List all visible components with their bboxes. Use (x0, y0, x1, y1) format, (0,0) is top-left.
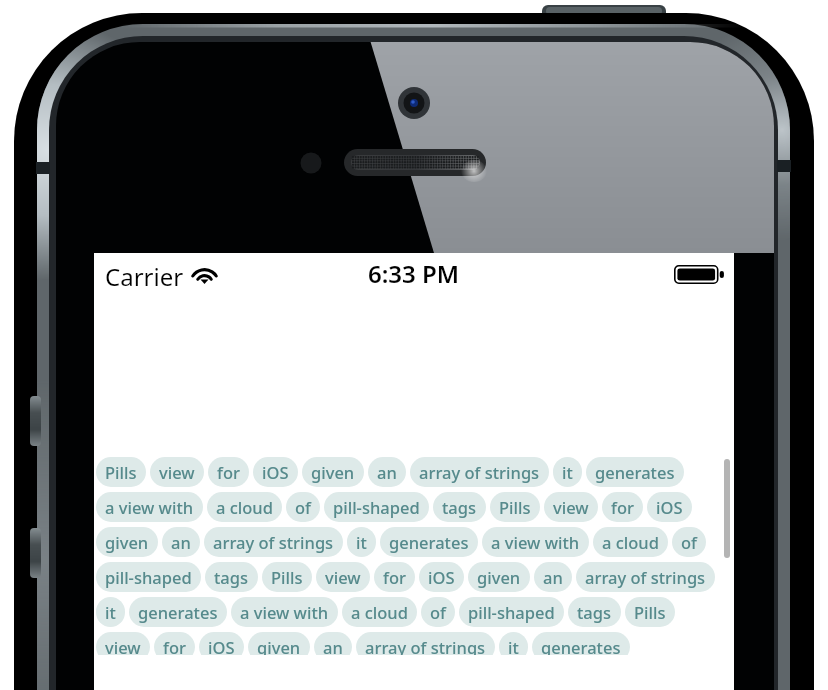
button[interactable]: for (154, 632, 195, 655)
button[interactable]: it (499, 632, 528, 655)
staticText: iOS (262, 461, 289, 483)
staticText: of (430, 601, 446, 623)
button[interactable]: Pills (262, 562, 312, 592)
button[interactable]: array of strings (410, 457, 549, 487)
staticText: pill-shaped (468, 601, 555, 623)
button[interactable]: an (314, 632, 352, 655)
button[interactable]: pill-shaped (459, 597, 564, 627)
button[interactable]: given (96, 527, 158, 557)
staticText: array of strings (419, 461, 540, 483)
button[interactable]: generates (129, 597, 227, 627)
button[interactable]: generates (532, 632, 630, 655)
button[interactable]: it (347, 527, 376, 557)
button[interactable]: iOS (253, 457, 298, 487)
button[interactable]: for (374, 562, 415, 592)
button[interactable]: a cloud (342, 597, 417, 627)
staticText: an (377, 461, 397, 483)
staticText: Pills (271, 566, 303, 588)
button[interactable]: generates (380, 527, 478, 557)
button[interactable]: Pills (625, 597, 675, 627)
staticText: it (356, 531, 367, 553)
staticText: a cloud (602, 531, 659, 553)
staticText: tags (442, 496, 477, 518)
staticText: for (217, 461, 240, 483)
staticText: given (477, 566, 521, 588)
button[interactable]: view (544, 492, 598, 522)
button[interactable]: view (316, 562, 370, 592)
staticText: for (383, 566, 406, 588)
staticText: pill-shaped (333, 496, 420, 518)
staticText: a cloud (351, 601, 408, 623)
staticText: an (171, 531, 191, 553)
button[interactable]: iOS (647, 492, 692, 522)
button[interactable]: tags (205, 562, 258, 592)
button[interactable]: pill-shaped (324, 492, 429, 522)
button[interactable]: array of strings (576, 562, 715, 592)
staticText: a view with (491, 531, 580, 553)
button[interactable]: a cloud (207, 492, 282, 522)
staticText: Pills (634, 601, 666, 623)
button[interactable]: given (248, 632, 310, 655)
staticText: Pills (105, 461, 137, 483)
staticText: generates (595, 461, 675, 483)
staticText: view (105, 636, 141, 655)
staticText: generates (389, 531, 469, 553)
staticText: given (105, 531, 149, 553)
button[interactable]: tags (433, 492, 486, 522)
staticText: a view with (240, 601, 329, 623)
button[interactable]: a cloud (593, 527, 668, 557)
staticText: array of strings (365, 636, 486, 655)
staticText: pill-shaped (105, 566, 192, 588)
button[interactable]: tags (568, 597, 621, 627)
staticText: iOS (656, 496, 683, 518)
button[interactable]: iOS (419, 562, 464, 592)
button[interactable]: it (553, 457, 582, 487)
button[interactable]: an (162, 527, 200, 557)
staticText: an (323, 636, 343, 655)
button[interactable]: given (468, 562, 530, 592)
button[interactable]: of (672, 527, 706, 557)
staticText: tags (214, 566, 249, 588)
staticText: for (611, 496, 634, 518)
button[interactable]: an (534, 562, 572, 592)
staticText: tags (577, 601, 612, 623)
button[interactable]: for (602, 492, 643, 522)
button[interactable]: view (96, 632, 150, 655)
button[interactable]: Pills (96, 457, 146, 487)
staticText: for (163, 636, 186, 655)
staticText: given (257, 636, 301, 655)
staticText: an (543, 566, 563, 588)
staticText: array of strings (585, 566, 706, 588)
button[interactable]: an (368, 457, 406, 487)
staticText: iOS (428, 566, 455, 588)
button[interactable]: it (96, 597, 125, 627)
staticText: a view with (105, 496, 194, 518)
button[interactable]: iOS (199, 632, 244, 655)
button[interactable]: for (208, 457, 249, 487)
staticText: view (159, 461, 195, 483)
button[interactable]: array of strings (204, 527, 343, 557)
staticText: given (311, 461, 355, 483)
button[interactable]: generates (586, 457, 684, 487)
button[interactable]: a view with (231, 597, 338, 627)
staticText: of (295, 496, 311, 518)
button[interactable]: Pills (490, 492, 540, 522)
button[interactable]: array of strings (356, 632, 495, 655)
button[interactable]: a view with (482, 527, 589, 557)
button[interactable]: view (150, 457, 204, 487)
button[interactable]: pill-shaped (96, 562, 201, 592)
staticText: it (508, 636, 519, 655)
button[interactable]: of (421, 597, 455, 627)
staticText: array of strings (213, 531, 334, 553)
staticText: it (562, 461, 573, 483)
staticText: a cloud (216, 496, 273, 518)
button[interactable]: of (286, 492, 320, 522)
staticText: view (325, 566, 361, 588)
staticText: Carrier (105, 260, 184, 293)
staticText: iOS (208, 636, 235, 655)
staticText: generates (541, 636, 621, 655)
staticText: view (553, 496, 589, 518)
button[interactable]: a view with (96, 492, 203, 522)
button[interactable]: given (302, 457, 364, 487)
staticText: it (105, 601, 116, 623)
